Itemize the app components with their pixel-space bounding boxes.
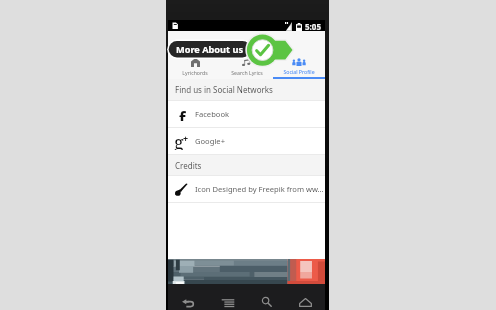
button[interactable]: Search xyxy=(247,284,286,310)
staticText: Search Lyrics xyxy=(231,69,263,76)
staticText: Icon Designed by Freepik from ww… xyxy=(195,184,324,194)
button[interactable]: Icon Designed by Freepik from ww… xyxy=(168,176,325,202)
staticText: Lyrichords xyxy=(182,69,208,76)
button[interactable]: More About us xyxy=(169,41,251,58)
staticText: Social Profile xyxy=(283,68,315,75)
staticText: 5:05 xyxy=(305,21,321,32)
button[interactable]: Search Lyrics xyxy=(221,59,273,79)
button[interactable]: Social Profile xyxy=(273,59,325,79)
button[interactable]: f xyxy=(168,101,325,127)
staticText: Facebook xyxy=(195,109,230,119)
button[interactable]: Menu xyxy=(208,284,247,310)
staticText: g xyxy=(174,130,184,150)
button[interactable]: g xyxy=(168,128,325,154)
button[interactable]: Back xyxy=(168,284,208,310)
staticText: + xyxy=(183,132,189,144)
staticText: Credits xyxy=(175,37,209,51)
staticText: Find us in Social Networks xyxy=(175,84,273,95)
button[interactable]: Lyrichords xyxy=(168,59,221,79)
staticText: Credits xyxy=(175,160,202,171)
staticText: More About us xyxy=(176,43,244,56)
button[interactable]: Home xyxy=(286,284,325,310)
staticText: f xyxy=(179,107,186,121)
staticText: Google+ xyxy=(195,136,225,146)
